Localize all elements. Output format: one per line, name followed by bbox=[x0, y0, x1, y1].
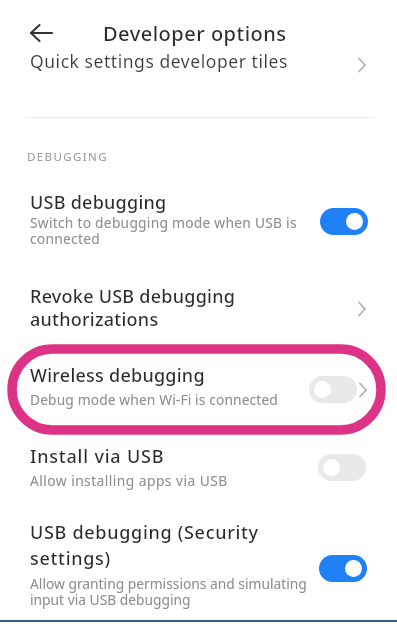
button[interactable] bbox=[0, 352, 397, 424]
staticText: Allow installing apps via USB bbox=[30, 471, 228, 490]
button[interactable] bbox=[0, 510, 397, 610]
button[interactable] bbox=[0, 46, 397, 102]
button[interactable] bbox=[309, 376, 357, 403]
staticText: Revoke USB debugging authorizations bbox=[30, 284, 236, 331]
button[interactable] bbox=[0, 276, 397, 340]
staticText: USB debugging bbox=[30, 190, 167, 215]
staticText: Install via USB bbox=[30, 444, 165, 469]
staticText: Switch to debugging mode when USB is con… bbox=[30, 213, 297, 248]
button[interactable] bbox=[318, 454, 366, 481]
staticText: Wireless debugging bbox=[30, 363, 205, 388]
staticText: Allow granting permissions and simulatin… bbox=[30, 574, 307, 609]
button[interactable] bbox=[0, 178, 397, 266]
staticText: Developer options bbox=[103, 20, 287, 47]
staticText: USB debugging (Security settings) bbox=[30, 520, 259, 570]
button[interactable] bbox=[319, 555, 367, 582]
button[interactable] bbox=[24, 20, 60, 46]
button[interactable] bbox=[320, 208, 368, 235]
staticText: Debug mode when Wi-Fi is connected bbox=[30, 390, 278, 409]
staticText: Quick settings developer tiles bbox=[30, 49, 288, 73]
staticText: DEBUGGING bbox=[27, 149, 109, 165]
button[interactable] bbox=[0, 438, 397, 500]
